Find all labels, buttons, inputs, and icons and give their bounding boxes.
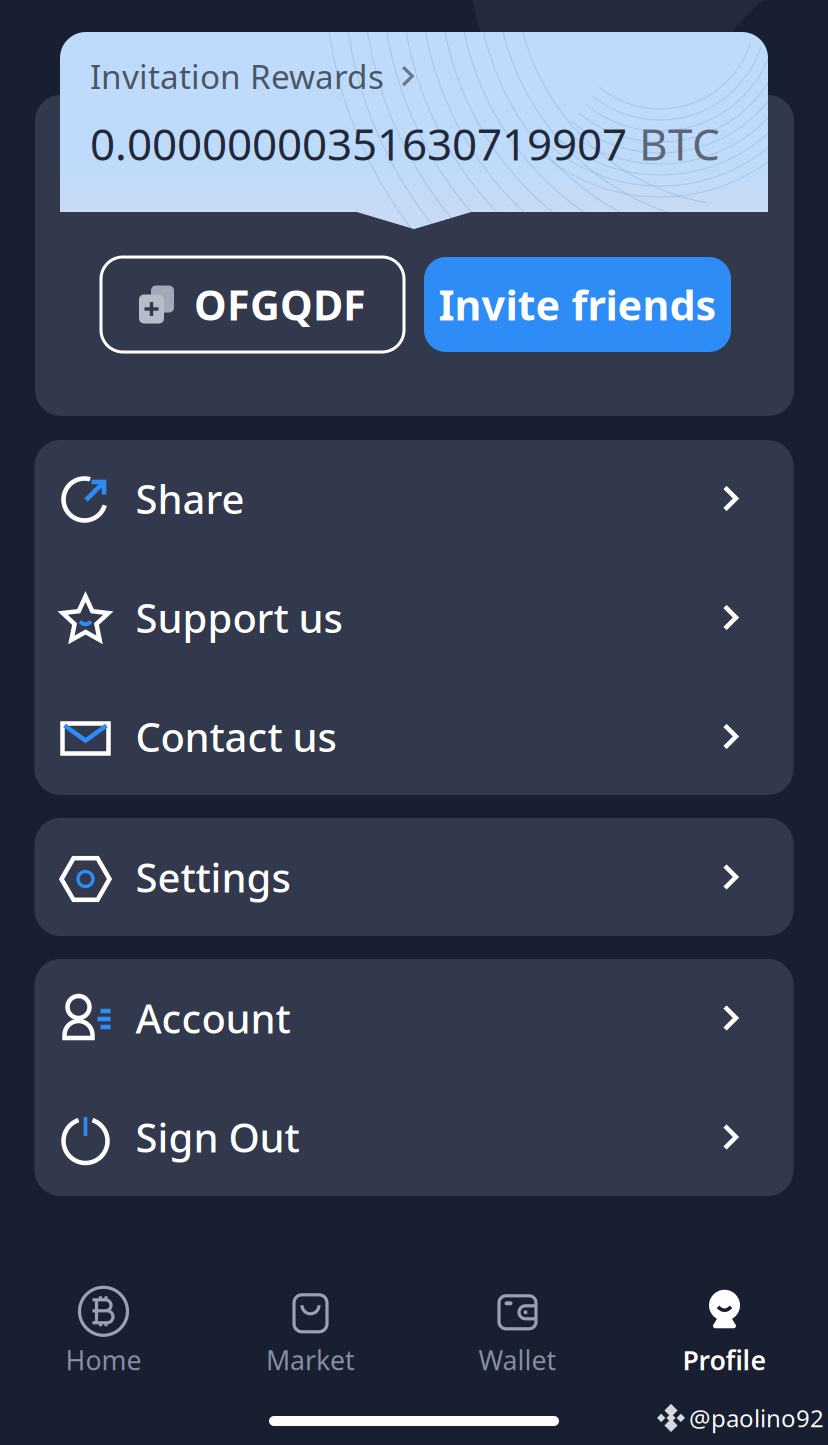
button[interactable]: Settings [34, 817, 793, 936]
button[interactable]: Invitation Rewards [90, 54, 415, 98]
staticText: Home [65, 1342, 141, 1378]
staticText: OFGQDF [194, 277, 366, 332]
button[interactable]: Share [34, 439, 793, 558]
staticText: Settings [135, 850, 290, 903]
staticText: Support us [135, 591, 342, 644]
button[interactable]: OFGQDF [101, 257, 404, 352]
staticText: Invite friends [438, 277, 716, 332]
staticText: Wallet [478, 1342, 556, 1378]
button[interactable]: Home [0, 1285, 207, 1378]
button[interactable]: Sign Out [34, 1077, 793, 1196]
button[interactable]: Profile [621, 1285, 828, 1378]
staticText: Sign Out [135, 1110, 299, 1163]
staticText: BTC [639, 114, 720, 173]
button[interactable]: Invite friends [424, 257, 731, 352]
button[interactable]: Market [207, 1285, 414, 1378]
staticText: Market [266, 1342, 355, 1378]
button[interactable]: Support us [34, 558, 793, 677]
button[interactable]: Contact us [34, 677, 793, 796]
staticText: @paolino92 [689, 1402, 824, 1434]
staticText: Contact us [135, 710, 336, 763]
button[interactable]: Account [34, 958, 793, 1077]
staticText: Share [135, 472, 244, 525]
staticText: Profile [682, 1342, 766, 1378]
button[interactable]: Wallet [414, 1285, 621, 1378]
staticText: Invitation Rewards [90, 54, 384, 98]
staticText: 0.00000000351630719907 [90, 114, 627, 173]
staticText: Account [135, 991, 290, 1044]
